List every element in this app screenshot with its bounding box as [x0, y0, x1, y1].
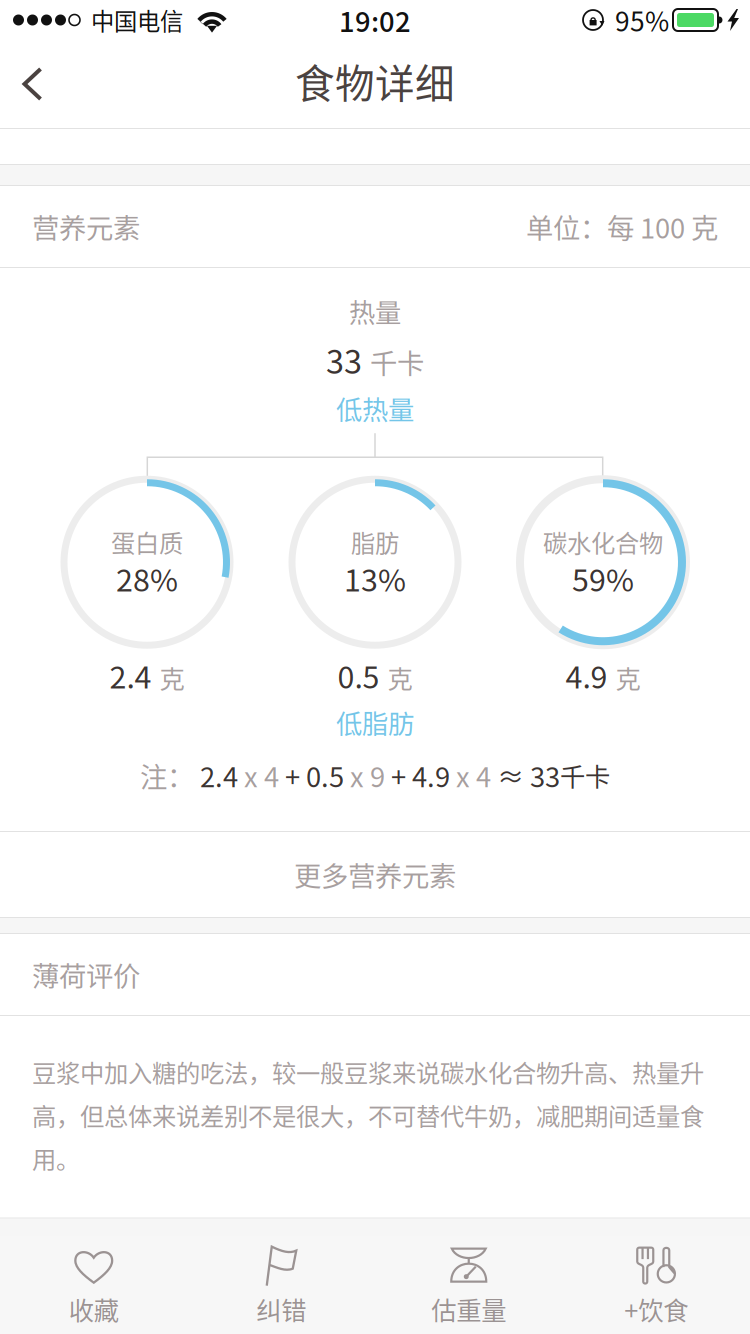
staticText: 薄荷评价	[32, 955, 140, 994]
staticText: 33	[530, 755, 560, 795]
staticText: 脂肪	[351, 524, 399, 559]
staticText: 13%	[344, 556, 406, 600]
staticText: 克	[387, 659, 412, 696]
staticText: 95%	[615, 1, 669, 39]
staticText: 0.5	[306, 755, 344, 795]
staticText: 低脂肪	[336, 703, 414, 741]
button[interactable]: 返回	[0, 51, 69, 117]
staticText: 营养元素	[32, 207, 140, 246]
staticText: 豆浆中加入糖的吃法，较一般豆浆来说碳水化合物升高、热量升高，但总体来说差别不是很…	[32, 1054, 704, 1176]
staticText: x 4	[450, 755, 491, 795]
staticText: 33	[326, 336, 362, 383]
staticText: +	[385, 755, 412, 795]
staticText: 59%	[572, 556, 634, 600]
staticText: 4.9	[412, 755, 450, 795]
staticText: +	[279, 755, 306, 795]
staticText: 纠错	[256, 1291, 306, 1327]
button[interactable]: 收藏	[0, 1236, 187, 1334]
staticText: 19:02	[339, 0, 411, 40]
staticText: 千卡	[370, 342, 424, 382]
staticText: x 4	[238, 755, 279, 795]
button[interactable]: +饮食	[562, 1236, 750, 1334]
staticText: +饮食	[624, 1291, 688, 1327]
staticText: 碳水化合物	[543, 524, 663, 559]
staticText: 千卡	[560, 757, 610, 794]
staticText: ≈	[491, 755, 530, 795]
staticText: 2.4	[200, 755, 238, 795]
staticText: 0.5	[337, 653, 379, 697]
button[interactable]: 估重量	[375, 1236, 562, 1334]
staticText: 低热量	[336, 389, 414, 427]
button[interactable]: 纠错	[187, 1236, 375, 1334]
staticText: 蛋白质	[111, 524, 183, 559]
staticText: 估重量	[431, 1291, 506, 1327]
staticText: 克	[159, 659, 184, 696]
staticText: 4.9	[565, 653, 607, 697]
staticText: 2.4	[109, 653, 151, 697]
staticText: 单位：每 100 克	[526, 207, 718, 246]
staticText: 热量	[349, 292, 401, 330]
staticText: 克	[615, 659, 640, 696]
staticText: 更多营养元素	[294, 855, 456, 894]
staticText: 中国电信	[91, 3, 183, 37]
staticText: 注：	[140, 755, 200, 795]
button[interactable]: 更多营养元素	[0, 832, 750, 917]
staticText: 28%	[116, 556, 178, 600]
staticText: 食物详细	[295, 52, 455, 110]
staticText: 收藏	[69, 1291, 119, 1327]
staticText: x 9	[344, 755, 385, 795]
